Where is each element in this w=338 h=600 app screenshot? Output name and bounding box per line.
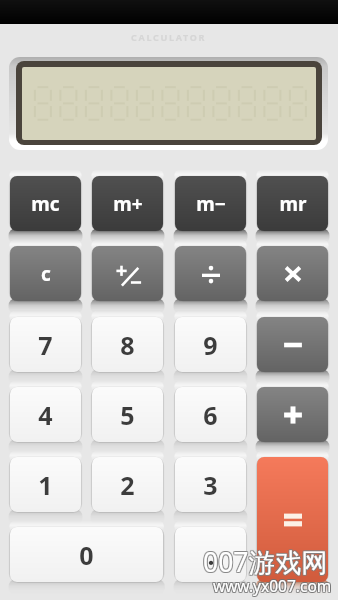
staticText: 0 bbox=[79, 538, 94, 572]
staticText: 5 bbox=[120, 398, 135, 432]
staticText: www.yx007.com bbox=[212, 575, 331, 596]
staticText: 007游戏网 bbox=[202, 543, 327, 579]
button[interactable]: 4 bbox=[10, 387, 81, 442]
staticText: 007游戏网 bbox=[203, 545, 328, 581]
staticText: 007游戏网 bbox=[202, 544, 327, 580]
button[interactable]: . bbox=[175, 527, 246, 582]
button[interactable]: Plus minus bbox=[92, 246, 163, 301]
button[interactable]: Equals bbox=[257, 457, 328, 582]
button[interactable]: 3 bbox=[175, 457, 246, 512]
button[interactable]: 0 bbox=[10, 527, 163, 582]
button[interactable]: mc bbox=[10, 176, 81, 231]
button[interactable]: Multiply bbox=[257, 246, 328, 301]
staticText: m+ bbox=[113, 191, 143, 217]
staticText: 8 bbox=[120, 328, 135, 362]
staticText: . bbox=[207, 538, 215, 572]
staticText: www.yx007.com bbox=[212, 574, 331, 595]
staticText: www.yx007.com bbox=[213, 574, 332, 595]
staticText: www.yx007.com bbox=[212, 576, 331, 597]
button[interactable]: m− bbox=[175, 176, 246, 231]
button[interactable]: Minus bbox=[257, 317, 328, 372]
staticText: 9 bbox=[203, 328, 218, 362]
button[interactable]: 5 bbox=[92, 387, 163, 442]
staticText: CALCULATOR bbox=[131, 31, 207, 43]
button[interactable]: 2 bbox=[92, 457, 163, 512]
staticText: 4 bbox=[38, 398, 53, 432]
staticText: 2 bbox=[120, 468, 135, 502]
staticText: 6 bbox=[203, 398, 218, 432]
other: Minus bbox=[276, 328, 310, 362]
staticText: www.yx007.com bbox=[213, 576, 332, 597]
staticText: 007游戏网 bbox=[203, 543, 328, 579]
staticText: 007游戏网 bbox=[203, 544, 328, 580]
staticText: mr bbox=[279, 191, 307, 217]
staticText: 1 bbox=[38, 468, 53, 502]
staticText: m− bbox=[196, 191, 226, 217]
button[interactable]: 8 bbox=[92, 317, 163, 372]
button[interactable]: 6 bbox=[175, 387, 246, 442]
staticText: mc bbox=[31, 191, 60, 217]
button[interactable]: 7 bbox=[10, 317, 81, 372]
staticText: www.yx007.com bbox=[214, 575, 333, 596]
other: Multiply bbox=[276, 257, 310, 291]
other: Plus bbox=[276, 398, 310, 432]
staticText: www.yx007.com bbox=[213, 575, 332, 596]
staticText: 007游戏网 bbox=[204, 543, 329, 579]
other: Plus minus bbox=[111, 257, 145, 291]
staticText: 7 bbox=[38, 328, 53, 362]
staticText: 007游戏网 bbox=[204, 545, 329, 581]
button[interactable]: m+ bbox=[92, 176, 163, 231]
staticText: 3 bbox=[203, 468, 218, 502]
button[interactable]: 1 bbox=[10, 457, 81, 512]
button[interactable]: c bbox=[10, 246, 81, 301]
staticText: 007游戏网 bbox=[202, 545, 327, 581]
button[interactable]: Divide bbox=[175, 246, 246, 301]
button[interactable]: mr bbox=[257, 176, 328, 231]
other: Divide bbox=[194, 257, 228, 291]
staticText: 007游戏网 bbox=[204, 544, 329, 580]
button[interactable]: Plus bbox=[257, 387, 328, 442]
staticText: www.yx007.com bbox=[214, 574, 333, 595]
button[interactable]: 9 bbox=[175, 317, 246, 372]
staticText: c bbox=[41, 261, 51, 287]
staticText: www.yx007.com bbox=[214, 576, 333, 597]
other: Equals bbox=[276, 503, 310, 537]
